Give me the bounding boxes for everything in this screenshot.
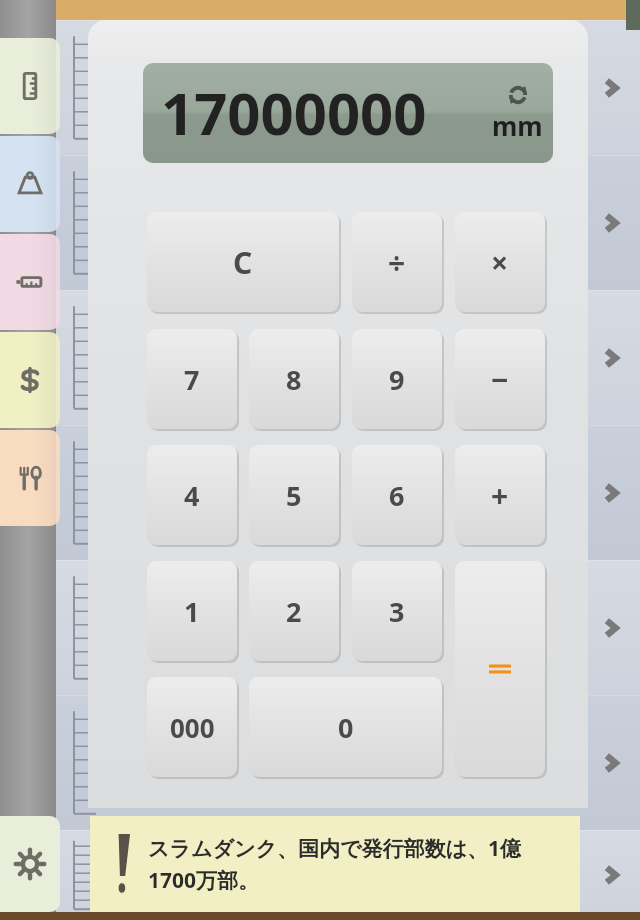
button[interactable]: 0 xyxy=(249,677,442,777)
staticText: スラムダンク、国内で発行部数は、1億 1700万部。 xyxy=(148,834,521,894)
staticText: 0 xyxy=(338,709,354,746)
other: Open xyxy=(598,862,624,888)
staticText: + xyxy=(491,475,509,516)
button[interactable] xyxy=(0,332,60,428)
button[interactable]: Open xyxy=(56,155,640,290)
button[interactable]: Open xyxy=(56,20,640,155)
button[interactable]: Settings xyxy=(0,816,60,912)
staticText: 6 xyxy=(389,477,405,514)
staticText: C xyxy=(233,242,253,283)
button[interactable]: + xyxy=(455,445,545,545)
button[interactable]: − xyxy=(455,329,545,429)
staticText: 3 xyxy=(389,593,405,630)
button[interactable]: 000 xyxy=(147,677,237,777)
button[interactable] xyxy=(0,234,60,330)
button[interactable]: Info xyxy=(90,816,580,912)
staticText: 1 xyxy=(184,593,200,630)
staticText: − xyxy=(491,359,509,400)
button[interactable]: C xyxy=(147,212,339,312)
button[interactable]: ÷ xyxy=(352,212,442,312)
staticText: mm xyxy=(492,108,543,143)
button[interactable]: Open xyxy=(56,695,640,830)
button[interactable]: 8 xyxy=(249,329,339,429)
button[interactable]: 2 xyxy=(249,561,339,661)
button[interactable] xyxy=(0,430,60,526)
other: Open xyxy=(598,750,624,776)
other: Open xyxy=(598,75,624,101)
button[interactable]: 4 xyxy=(147,445,237,545)
button[interactable]: Open xyxy=(56,290,640,425)
button[interactable]: Open xyxy=(56,830,640,920)
other: Open xyxy=(598,345,624,371)
other: Open xyxy=(598,210,624,236)
staticText: 7 xyxy=(184,361,200,398)
staticText: 17000000 xyxy=(161,73,427,152)
button[interactable] xyxy=(0,136,60,232)
button[interactable]: × xyxy=(455,212,545,312)
button[interactable]: 5 xyxy=(249,445,339,545)
button[interactable]: 7 xyxy=(147,329,237,429)
staticText: 000 xyxy=(170,710,215,745)
staticText: ÷ xyxy=(388,242,406,283)
button[interactable]: 17000000 xyxy=(143,63,553,163)
other: Switch unit xyxy=(506,83,530,107)
button[interactable]: Open xyxy=(56,560,640,695)
staticText: 2 xyxy=(286,593,302,630)
button[interactable]: 9 xyxy=(352,329,442,429)
button[interactable]: 3 xyxy=(352,561,442,661)
staticText: 4 xyxy=(184,477,200,514)
staticText: 9 xyxy=(389,361,405,398)
button[interactable] xyxy=(0,38,60,134)
button[interactable]: 6 xyxy=(352,445,442,545)
button[interactable] xyxy=(455,561,545,777)
staticText: 8 xyxy=(286,361,302,398)
other: Open xyxy=(598,480,624,506)
staticText: × xyxy=(491,242,509,283)
other: Open xyxy=(598,615,624,641)
button[interactable]: Open xyxy=(56,425,640,560)
button[interactable]: 1 xyxy=(147,561,237,661)
other: Info xyxy=(112,834,134,894)
staticText: 5 xyxy=(286,477,302,514)
